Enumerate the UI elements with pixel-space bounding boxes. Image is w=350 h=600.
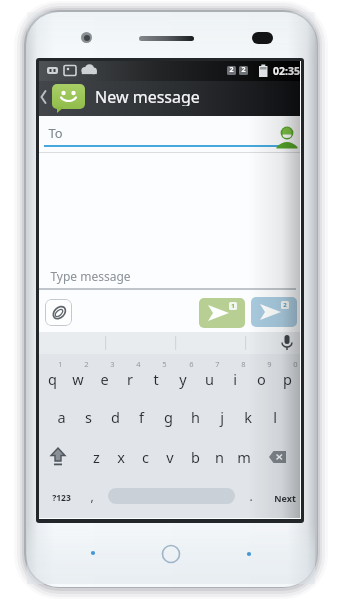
staticText: z [93,447,100,467]
staticText: 8 [241,359,246,369]
staticText: Next [274,492,296,504]
staticText: h [191,407,200,427]
staticText: New message [95,86,200,106]
button[interactable]: h [183,406,207,428]
staticText: 2 [283,301,287,309]
button[interactable]: n [207,446,231,468]
button[interactable]: l [263,406,287,428]
button[interactable]: 1 [199,298,245,328]
button[interactable]: g [156,406,180,428]
button[interactable]: r [118,368,142,390]
button[interactable]: 2 [251,297,297,327]
button[interactable] [273,123,301,152]
staticText: To [48,124,63,142]
staticText: a [57,407,66,427]
staticText: y [179,369,187,389]
staticText: 3 [110,359,115,369]
button[interactable]: u [197,368,221,390]
button[interactable]: a [49,406,73,428]
staticText: k [244,407,252,427]
button[interactable]: p [275,368,299,390]
staticText: 2 [229,65,234,75]
staticText: 6 [189,359,194,369]
staticText: 1 [58,359,63,369]
button[interactable]: t [144,368,168,390]
staticText: e [100,369,109,389]
staticText: 2 [241,65,246,75]
button[interactable] [108,488,235,504]
staticText: . [249,488,253,504]
staticText: r [127,369,133,389]
staticText: f [139,407,144,427]
button[interactable]: k [236,406,260,428]
button[interactable]: m [232,446,256,468]
staticText: 0 [293,359,298,369]
staticText: t [153,369,159,389]
staticText: b [191,447,200,467]
staticText: g [164,407,173,427]
staticText: 5 [162,359,167,369]
staticText: i [233,369,237,389]
staticText: 7 [215,359,220,369]
button[interactable]: f [129,406,153,428]
staticText: Type message [50,268,131,284]
button[interactable]: o [249,368,273,390]
button[interactable]: b [183,446,207,468]
staticText: q [48,369,57,389]
staticText: v [166,447,174,467]
staticText: x [117,447,125,467]
staticText: j [220,407,224,427]
button[interactable]: v [158,446,182,468]
staticText: 2 [84,359,89,369]
staticText: 9 [267,359,272,369]
button[interactable] [45,299,72,326]
button[interactable]: y [171,368,195,390]
button[interactable]: New message [39,81,300,116]
button[interactable]: j [210,406,234,428]
staticText: m [237,447,251,467]
button[interactable]: z [84,446,108,468]
staticText: d [111,407,120,427]
staticText: u [205,369,214,389]
button[interactable]: To [39,116,300,153]
button[interactable]: x [109,446,133,468]
button[interactable]: e [92,368,116,390]
staticText: c [142,447,149,467]
button[interactable]: d [103,406,127,428]
staticText: n [215,447,224,467]
button[interactable]: i [223,368,247,390]
staticText: p [283,369,292,389]
button[interactable]: w [66,368,90,390]
button[interactable]: s [76,406,100,428]
staticText: ?123 [52,492,71,504]
staticText: 02:35 [273,64,300,78]
button[interactable] [47,445,69,469]
staticText: 4 [136,359,141,369]
button[interactable] [265,446,289,468]
staticText: , [90,488,94,504]
staticText: o [257,369,266,389]
staticText: w [72,369,84,389]
staticText: 1 [231,302,235,310]
staticText: l [273,407,277,427]
staticText: s [85,407,92,427]
button[interactable]: c [133,446,157,468]
button[interactable]: q [40,368,64,390]
